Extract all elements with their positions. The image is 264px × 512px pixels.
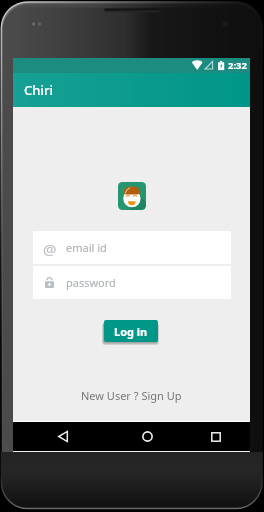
staticText: New User ? Sign Up: [81, 388, 182, 403]
button[interactable]: Back: [13, 422, 112, 451]
staticText: @: [43, 239, 57, 259]
button[interactable]: @: [33, 231, 231, 264]
staticText: Log in: [114, 324, 148, 339]
button[interactable]: Recents: [182, 422, 250, 451]
button[interactable]: New User ? Sign Up: [75, 385, 188, 406]
staticText: 2:32: [228, 59, 247, 72]
staticText: password: [66, 275, 116, 290]
button[interactable]: Log in: [104, 320, 158, 342]
staticText: Chiri: [24, 81, 53, 99]
staticText: email id: [66, 240, 107, 255]
button[interactable]: Home: [112, 422, 182, 451]
button[interactable]: password: [33, 266, 231, 299]
